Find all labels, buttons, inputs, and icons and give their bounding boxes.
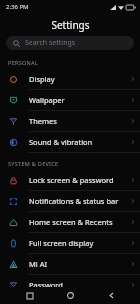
staticText: Password	[29, 280, 130, 290]
staticText: Wallpaper	[29, 95, 130, 105]
staticText: Themes	[29, 116, 130, 126]
button[interactable]: Lock screen & password	[0, 170, 140, 190]
staticText: Mi AI	[29, 259, 130, 269]
staticText: 2:36 PM	[6, 3, 29, 11]
staticText: Display	[29, 74, 130, 84]
staticText: Lock screen & password	[29, 175, 130, 185]
button[interactable]: Back	[100, 287, 122, 304]
button[interactable]: Home screen & Recents	[0, 212, 140, 232]
button[interactable]: Wallpaper	[0, 90, 140, 110]
staticText: SYSTEM & DEVICE	[8, 160, 59, 167]
staticText: Sound & vibration	[29, 137, 130, 147]
button[interactable]: Full screen display	[0, 233, 140, 253]
button[interactable]: Home	[59, 287, 81, 304]
button[interactable]: Password	[0, 275, 140, 295]
button[interactable]: Sound & vibration	[0, 132, 140, 152]
staticText: Settings	[51, 18, 90, 32]
button[interactable]: Themes	[0, 111, 140, 131]
button[interactable]: Mi AI	[0, 254, 140, 274]
button[interactable]: Display	[0, 69, 140, 89]
button[interactable]: Search settings	[6, 36, 134, 50]
button[interactable]: Recents	[19, 287, 41, 304]
staticText: Notifications & status bar	[29, 196, 130, 206]
staticText: Search settings	[25, 38, 76, 48]
staticText: PERSONAL	[8, 59, 39, 66]
staticText: Full screen display	[29, 238, 130, 248]
staticText: Home screen & Recents	[29, 217, 130, 227]
button[interactable]: Notifications & status bar	[0, 191, 140, 211]
